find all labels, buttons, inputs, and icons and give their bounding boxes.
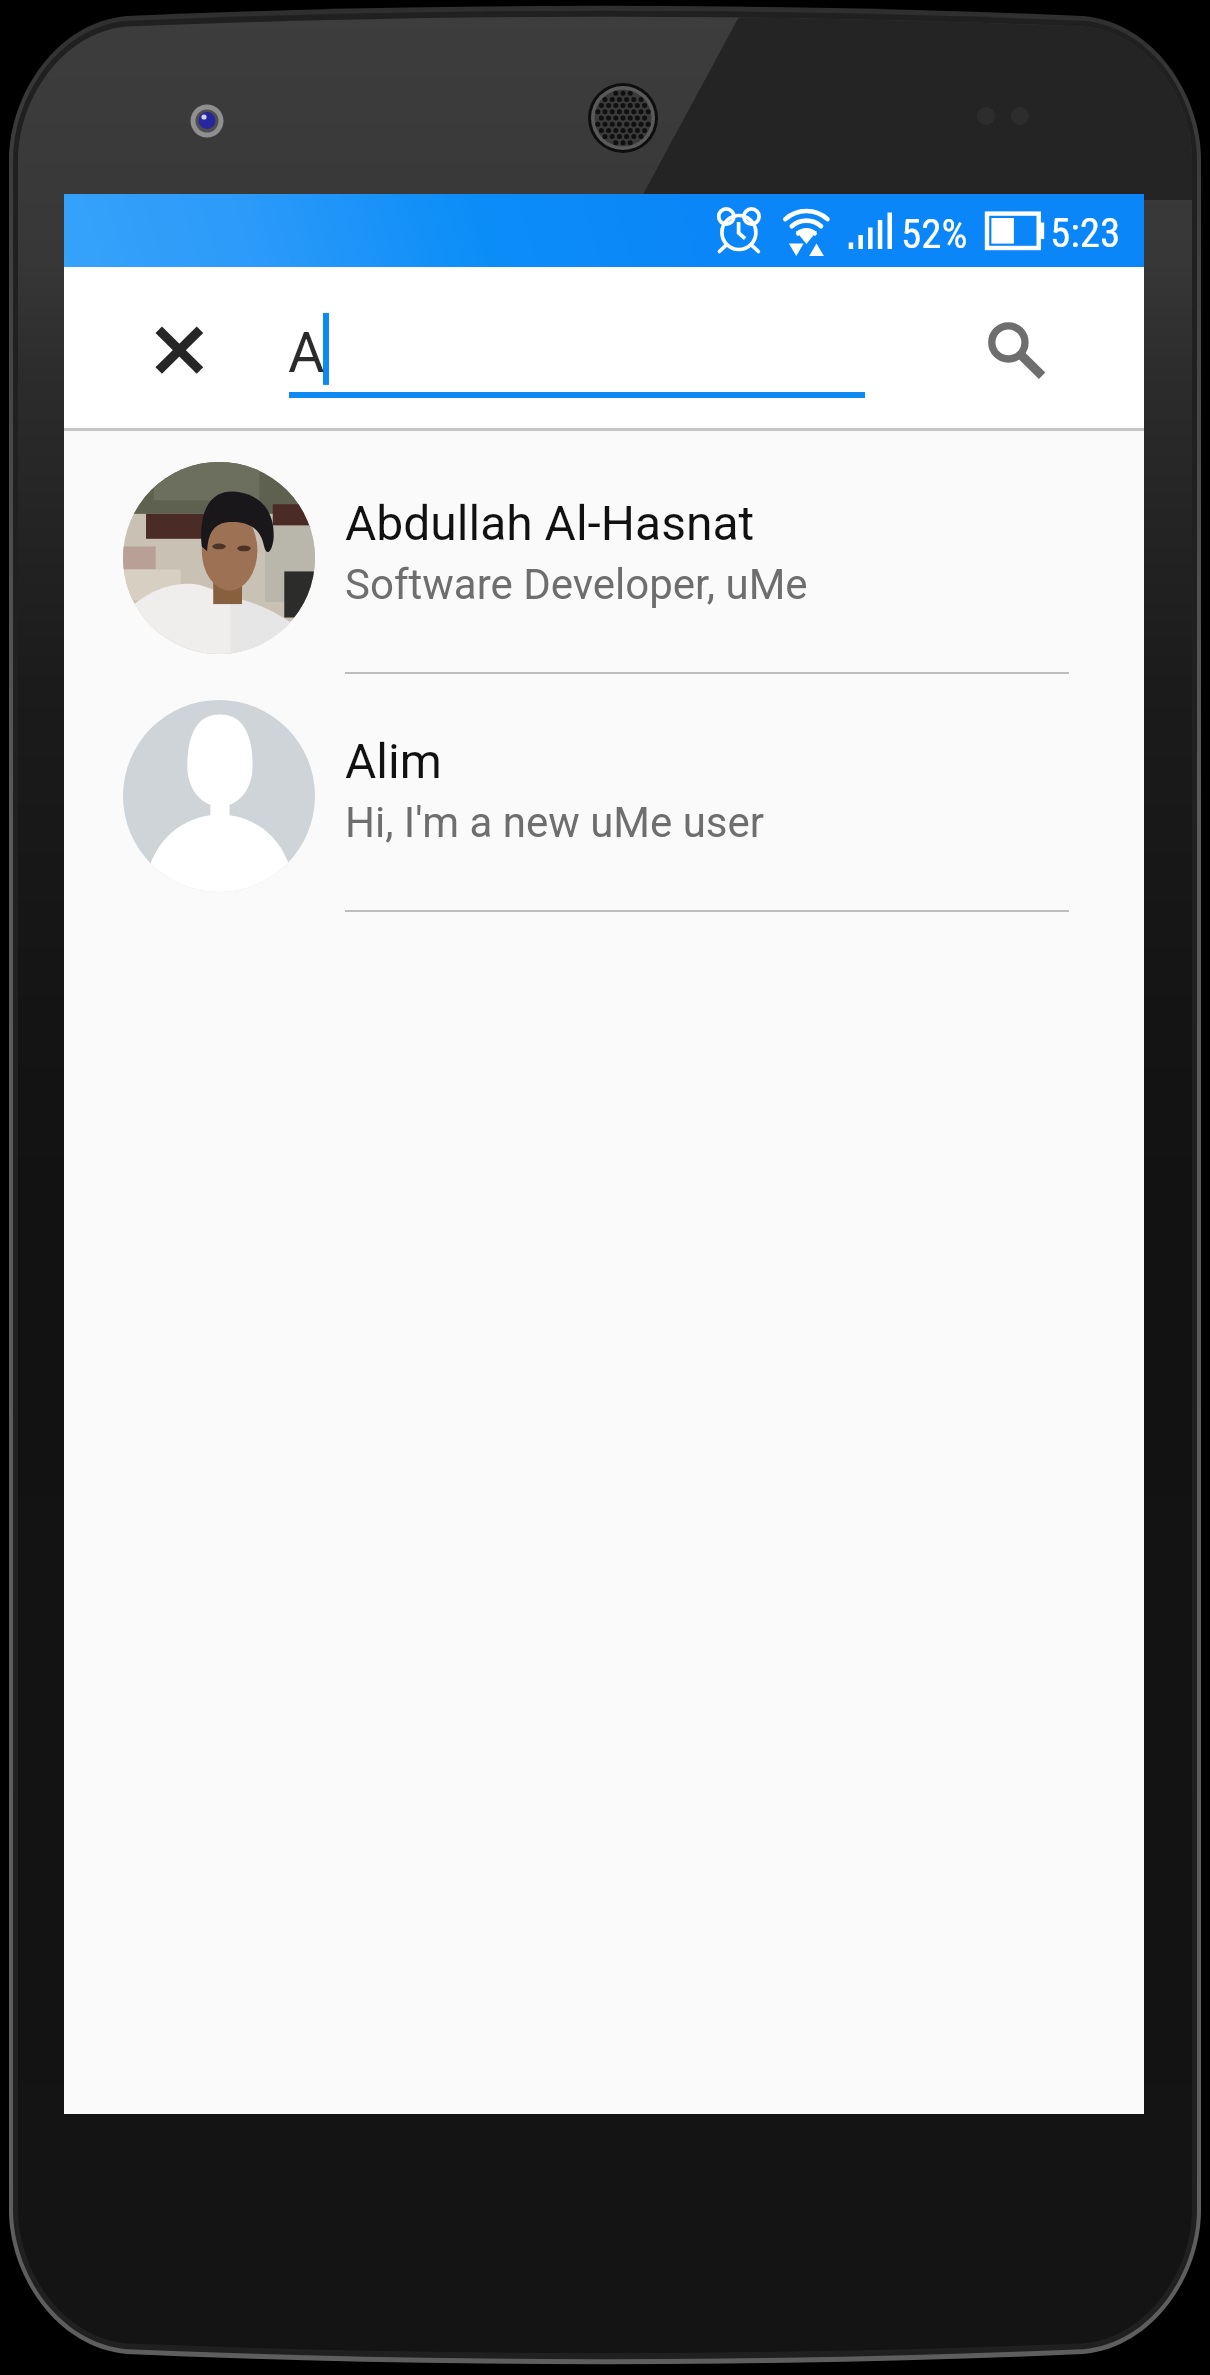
button[interactable]: Search query field (244, 274, 924, 422)
button[interactable]: Abdullah Al-Hasnat (64, 432, 1144, 670)
staticText: A (288, 320, 325, 386)
staticText: Abdullah Al-Hasnat (345, 495, 755, 551)
staticText: 52% (901, 210, 968, 258)
button[interactable]: Close search (99, 274, 259, 422)
staticText: 5:23 (1050, 209, 1121, 257)
staticText: Software Developer, uMe (345, 560, 808, 609)
staticText: Alim (345, 733, 442, 789)
staticText: Hi, I'm a new uMe user (345, 798, 765, 847)
button[interactable]: Search (944, 274, 1104, 422)
button[interactable]: Alim (64, 670, 1144, 908)
